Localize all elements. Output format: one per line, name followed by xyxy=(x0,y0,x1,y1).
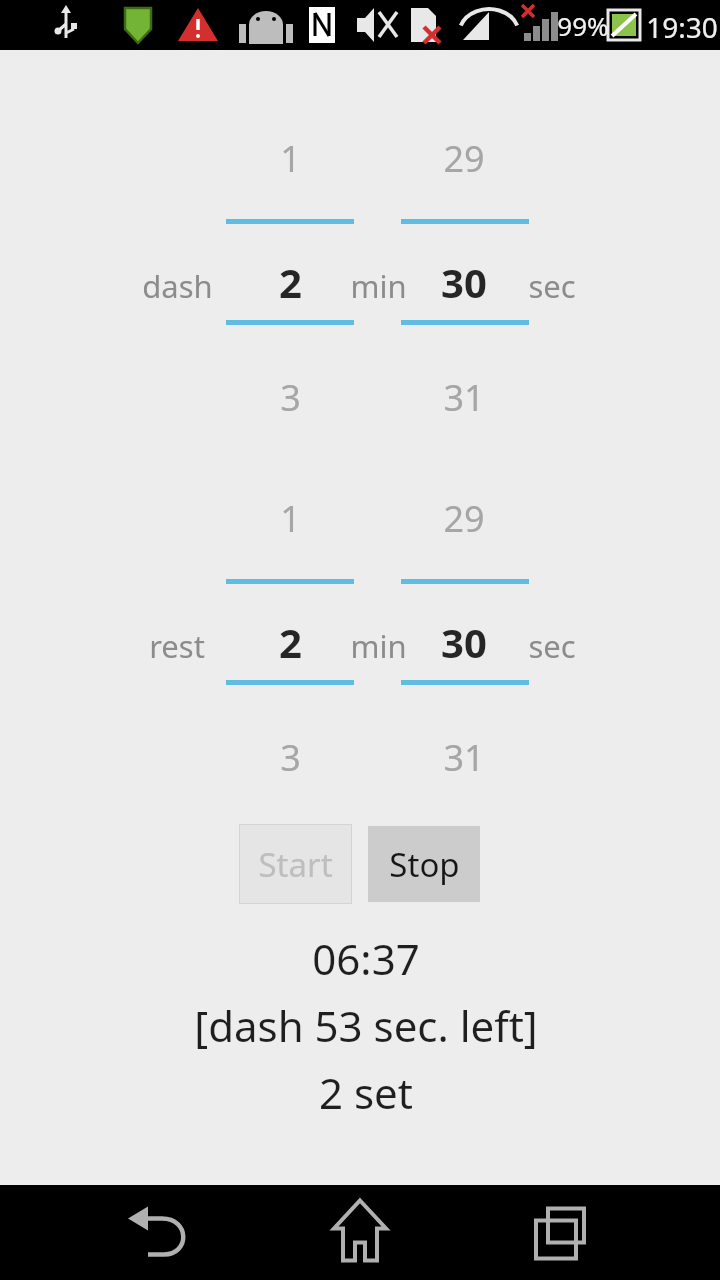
button[interactable]: Stop xyxy=(368,826,480,902)
staticText: sec xyxy=(528,265,576,307)
staticText: 3 xyxy=(280,373,301,422)
staticText: 1 xyxy=(280,494,301,543)
button[interactable]: dash xyxy=(0,248,720,324)
staticText: 29 xyxy=(443,494,485,543)
button[interactable]: Back xyxy=(90,1185,230,1280)
staticText: 30 xyxy=(441,255,487,309)
staticText: sec xyxy=(528,625,576,667)
staticText: 31 xyxy=(443,373,485,422)
staticText: dash xyxy=(142,265,213,307)
staticText: 1 xyxy=(280,134,301,183)
staticText: 2 set xyxy=(319,1064,413,1121)
staticText: 3 xyxy=(280,733,301,782)
staticText: Start xyxy=(258,842,333,887)
button[interactable]: Recents xyxy=(490,1185,630,1280)
staticText: Stop xyxy=(389,842,460,887)
staticText: 30 xyxy=(441,615,487,669)
staticText: 2 xyxy=(279,615,302,669)
staticText: 31 xyxy=(443,733,485,782)
button[interactable]: rest xyxy=(0,608,720,684)
button[interactable]: Start xyxy=(239,824,352,904)
staticText: 99% xyxy=(557,8,609,43)
staticText: rest xyxy=(149,625,205,667)
staticText: min xyxy=(350,265,407,307)
staticText: 2 xyxy=(279,255,302,309)
staticText: 29 xyxy=(443,134,485,183)
staticText: min xyxy=(350,625,407,667)
staticText: 19:30 xyxy=(646,8,718,46)
button[interactable]: Home xyxy=(290,1185,430,1280)
staticText: 06:37 xyxy=(312,930,420,987)
staticText: [dash 53 sec. left] xyxy=(194,997,538,1054)
